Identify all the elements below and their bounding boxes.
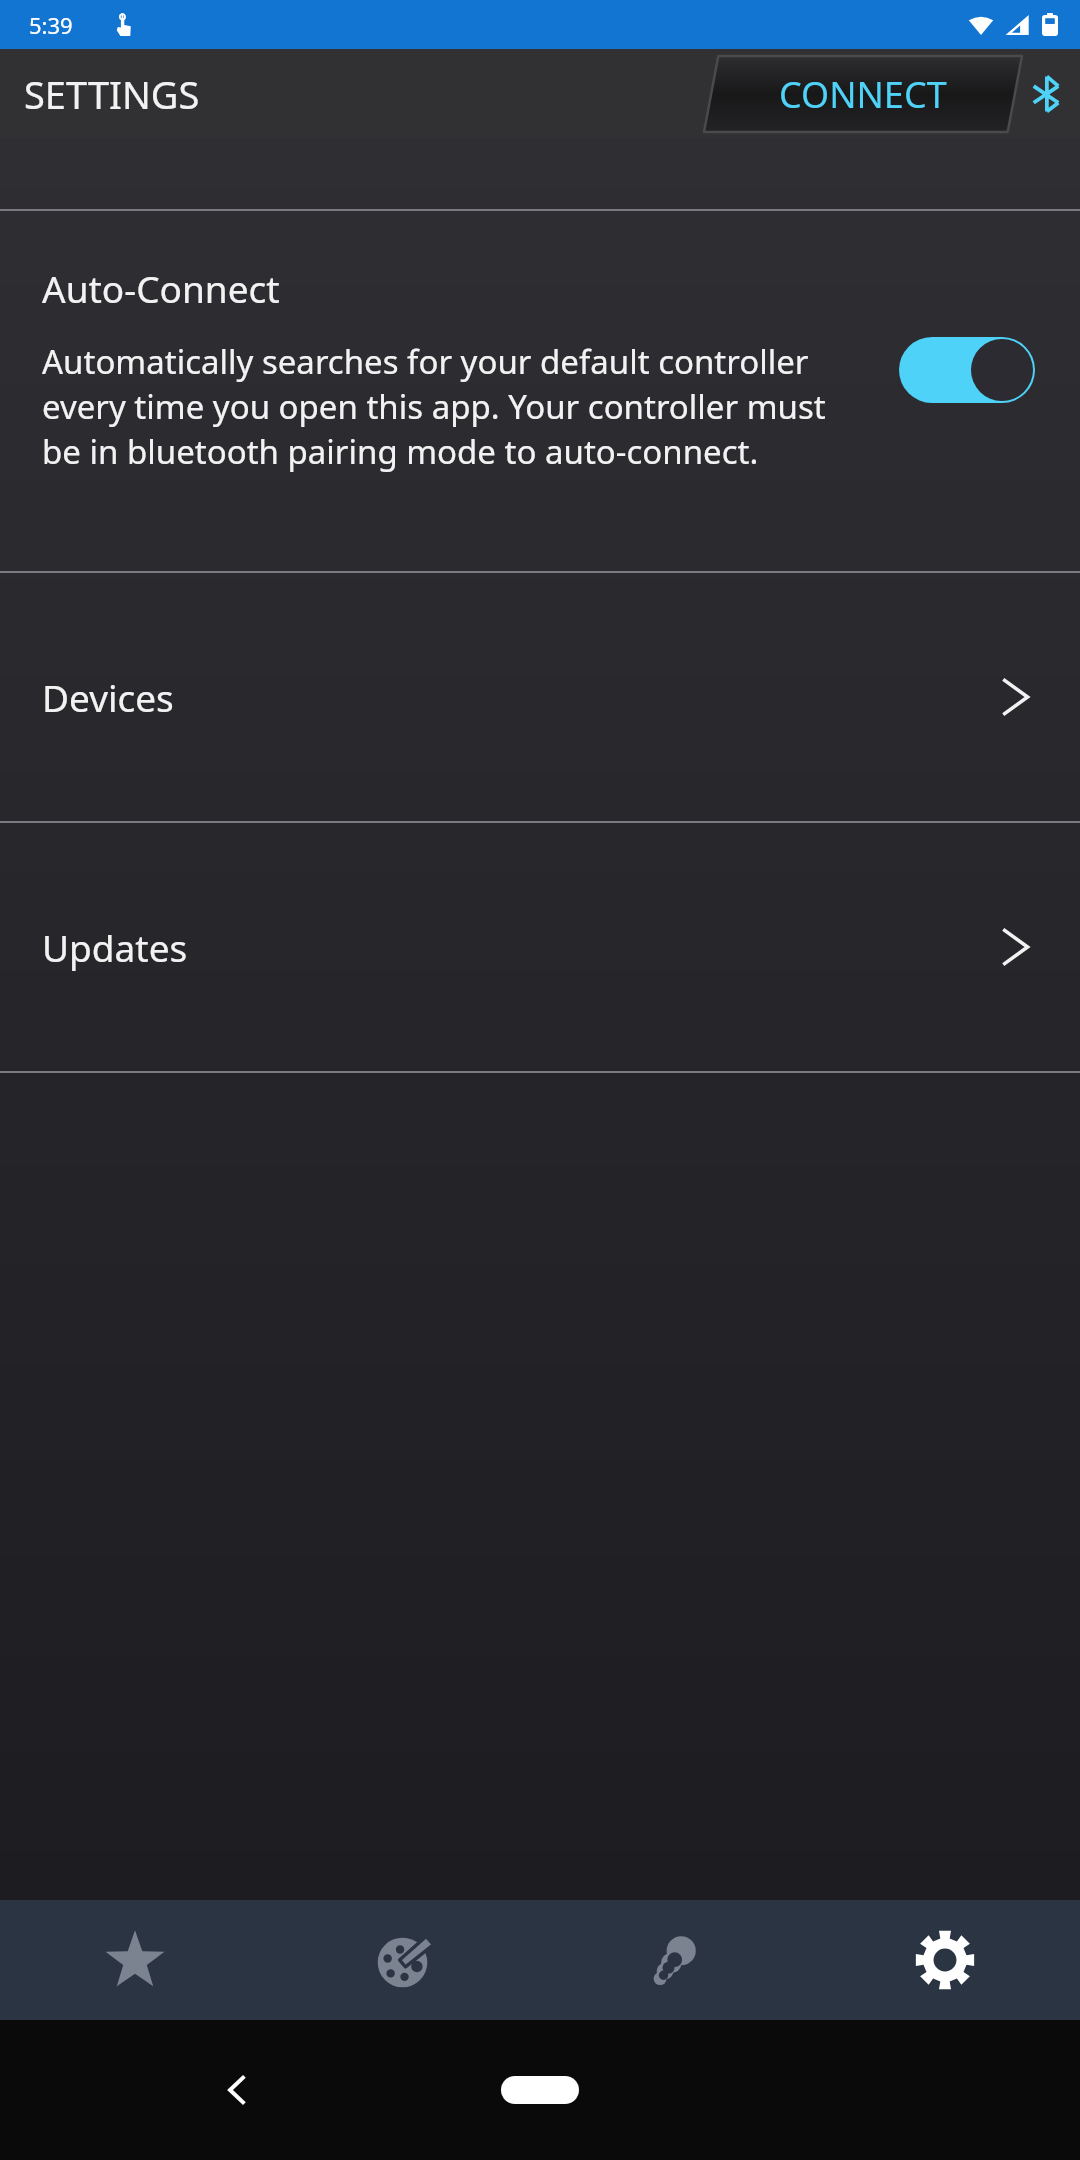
button[interactable]: Settings bbox=[810, 1900, 1080, 2020]
button[interactable]: CONNECT bbox=[704, 56, 1022, 132]
button[interactable]: Bluetooth bbox=[1024, 72, 1068, 116]
staticText: 5:39 bbox=[29, 10, 73, 40]
button[interactable]: Auto-Connect toggle bbox=[899, 337, 1035, 403]
staticText: CONNECT bbox=[779, 70, 947, 119]
button[interactable]: Back bbox=[218, 2070, 258, 2110]
staticText: SETTINGS bbox=[24, 68, 200, 120]
button[interactable]: Hardware bbox=[540, 1900, 810, 2020]
button[interactable]: Auto-Connect bbox=[0, 211, 1080, 571]
button[interactable]: Updates bbox=[0, 823, 1080, 1071]
staticText: Automatically searches for your default … bbox=[42, 339, 832, 474]
button[interactable]: Themes bbox=[270, 1900, 540, 2020]
staticText: Devices bbox=[42, 672, 174, 722]
staticText: Updates bbox=[42, 922, 188, 972]
button[interactable]: Favorites bbox=[0, 1900, 270, 2020]
button[interactable]: Devices bbox=[0, 573, 1080, 821]
button[interactable]: Home bbox=[501, 2076, 579, 2104]
staticText: Auto-Connect bbox=[42, 263, 280, 313]
